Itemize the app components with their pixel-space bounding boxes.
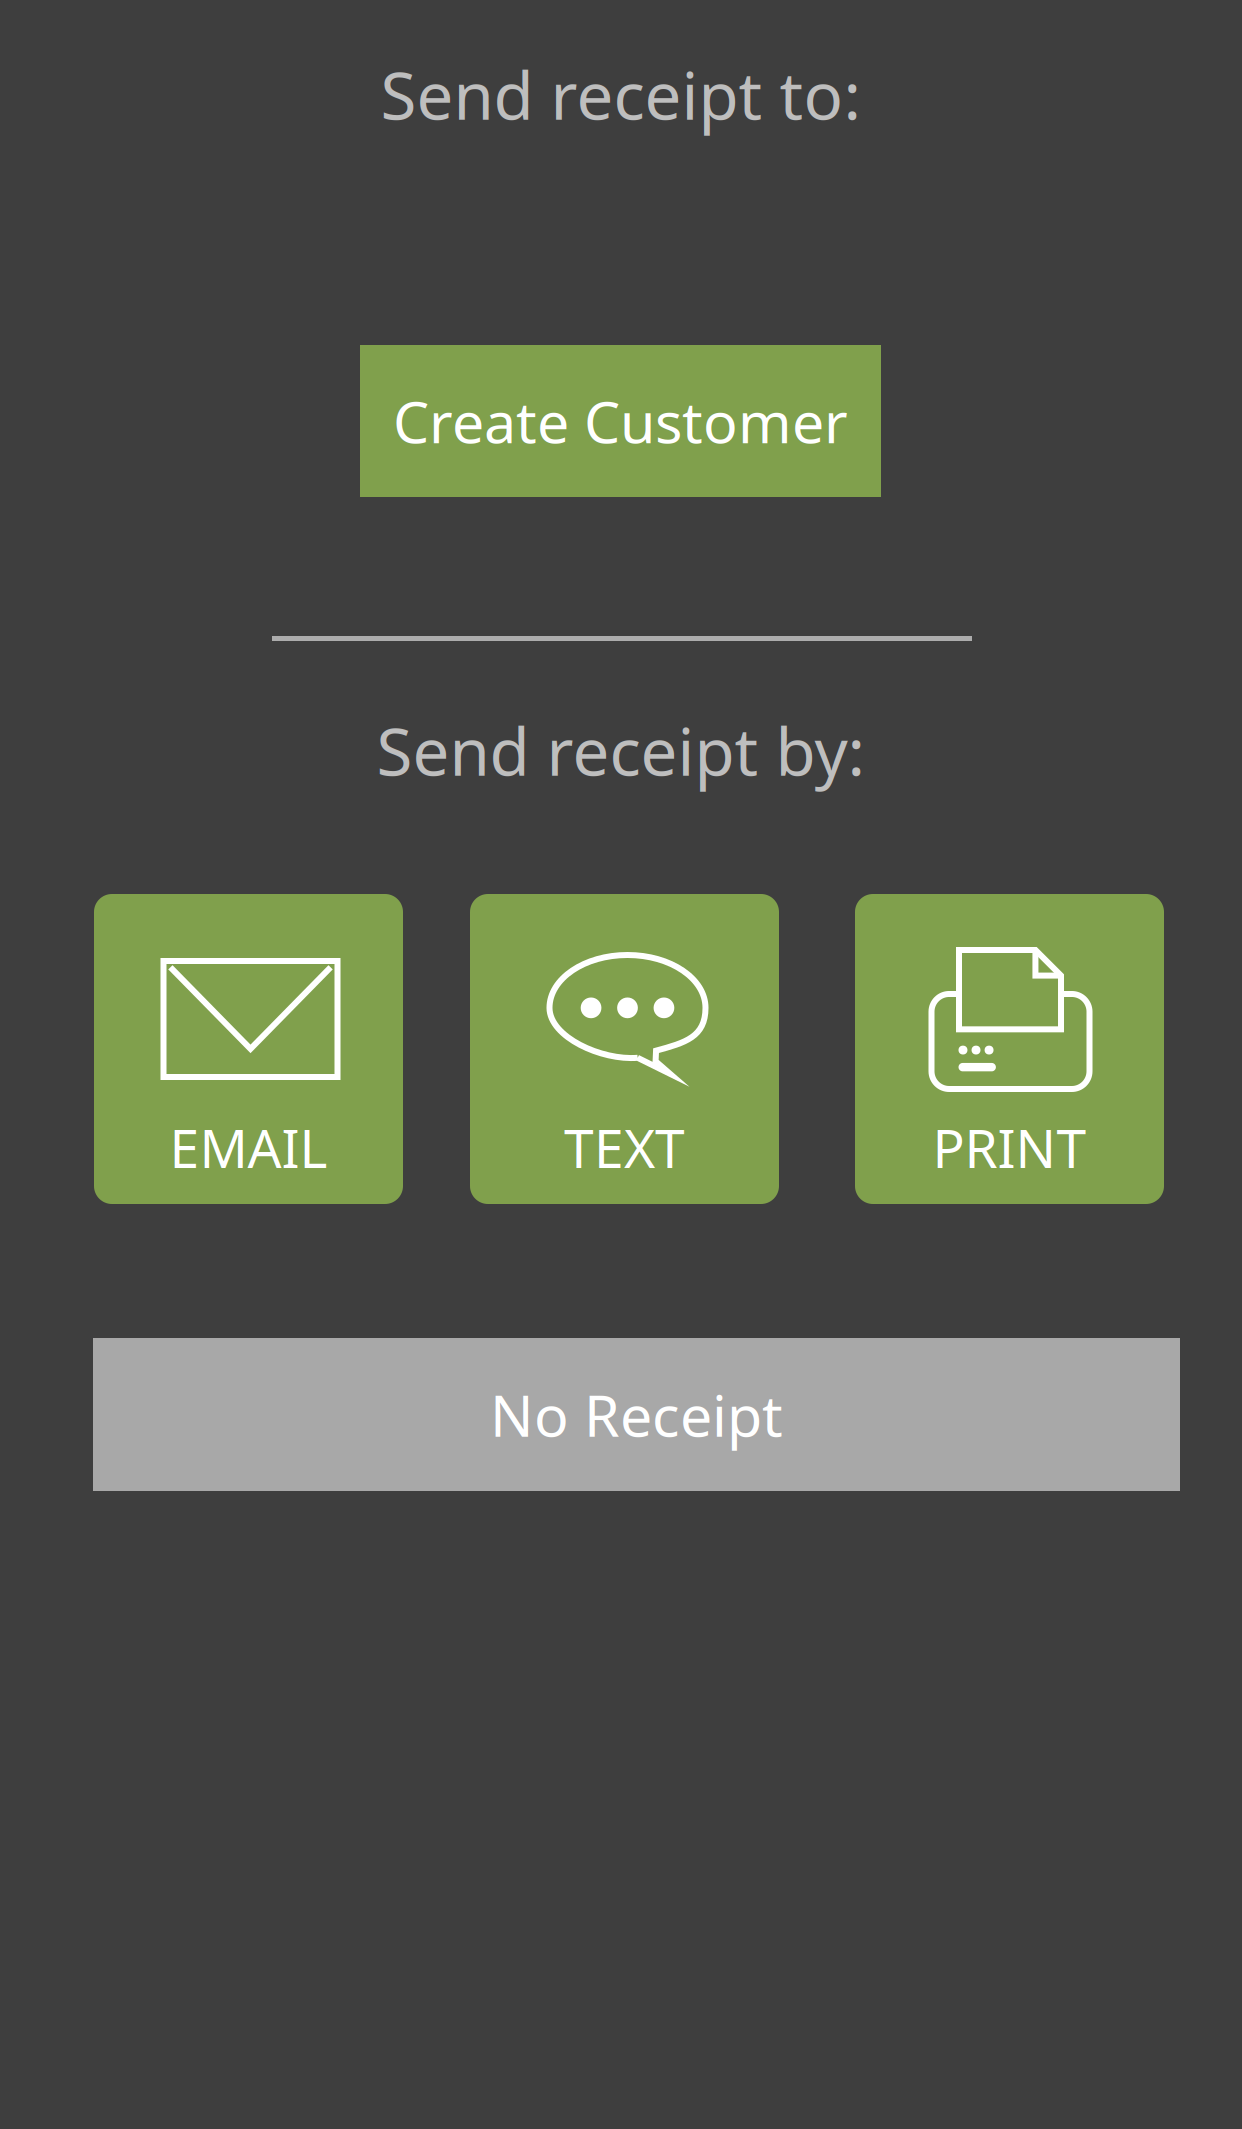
button[interactable]: EMAIL — [94, 894, 403, 1204]
staticText: Send receipt by: — [376, 707, 865, 794]
button[interactable]: TEXT — [470, 894, 779, 1204]
staticText: No Receipt — [490, 1376, 783, 1452]
staticText: TEXT — [564, 1112, 685, 1183]
button[interactable]: No Receipt — [93, 1338, 1180, 1491]
button[interactable]: PRINT — [855, 894, 1164, 1204]
staticText: Send receipt to: — [380, 51, 861, 138]
staticText: EMAIL — [169, 1112, 327, 1183]
button[interactable]: Create Customer — [360, 345, 881, 497]
staticText: PRINT — [932, 1112, 1086, 1183]
staticText: Create Customer — [393, 383, 848, 459]
